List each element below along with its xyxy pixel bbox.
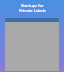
staticText: Private Labels [19, 8, 46, 13]
staticText: Startups for [21, 3, 44, 8]
